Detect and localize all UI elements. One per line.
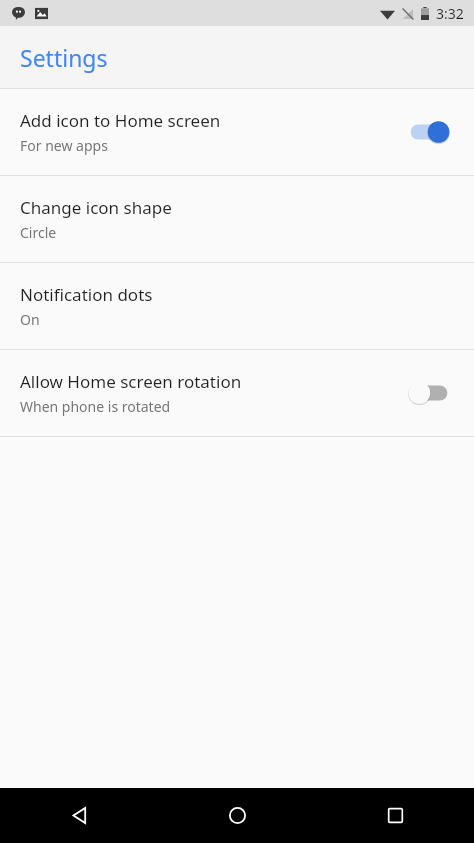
button[interactable]: Add icon to Home screen: [0, 89, 474, 175]
button[interactable]: Back: [0, 788, 158, 843]
staticText: Change icon shape: [20, 196, 172, 219]
staticText: 3:32: [436, 4, 464, 23]
staticText: On: [20, 310, 40, 329]
button[interactable]: Toggle off: [406, 378, 452, 408]
button[interactable]: Home: [158, 788, 316, 843]
button[interactable]: Change icon shape: [0, 176, 474, 262]
staticText: For new apps: [20, 136, 108, 155]
staticText: Settings: [20, 42, 108, 73]
button[interactable]: Allow Home screen rotation: [0, 350, 474, 436]
button[interactable]: Toggle on: [406, 117, 452, 147]
staticText: Allow Home screen rotation: [20, 370, 242, 393]
staticText: Circle: [20, 223, 57, 242]
staticText: When phone is rotated: [20, 397, 171, 416]
button[interactable]: Notification dots: [0, 263, 474, 349]
button[interactable]: Recent apps: [316, 788, 474, 843]
staticText: Notification dots: [20, 283, 153, 306]
staticText: Add icon to Home screen: [20, 109, 221, 132]
